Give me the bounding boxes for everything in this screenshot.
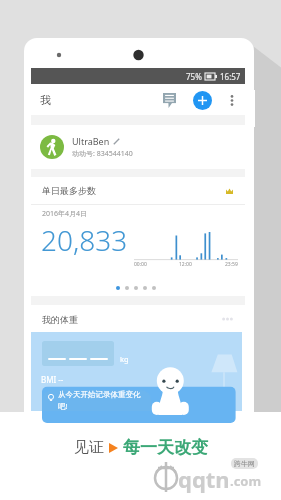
staticText: 见证 <box>74 438 104 457</box>
staticText: qqtn <box>178 464 230 494</box>
staticText: 从今天开始记录体重变化吧! <box>58 390 141 411</box>
staticText: 单日最多步数 <box>42 185 96 196</box>
staticText: 75% <box>186 71 202 82</box>
button[interactable]: 从今天开始记录体重变化吧! <box>42 390 151 411</box>
staticText: 动动号: 834544140 <box>72 149 133 159</box>
staticText: 23:59 <box>225 261 238 268</box>
staticText: 跨牛网 <box>234 459 255 468</box>
staticText: 12:00 <box>179 261 192 268</box>
button[interactable]: 我的体重 <box>31 305 245 333</box>
staticText: 我 <box>40 93 51 107</box>
button[interactable]: More options <box>220 88 244 112</box>
staticText: 00:00 <box>134 261 147 268</box>
staticText: 20,833 <box>41 221 128 259</box>
button[interactable]: 我 <box>40 93 51 107</box>
staticText: 我的体重 <box>42 314 78 325</box>
staticText: .com <box>230 472 262 490</box>
button[interactable] <box>42 341 114 366</box>
staticText: UltraBen <box>72 135 110 147</box>
staticText: 2016年4月4日 <box>42 209 88 219</box>
button[interactable]: Messages <box>157 88 181 112</box>
button[interactable]: Add <box>193 91 212 110</box>
other: More <box>222 317 233 321</box>
staticText: 每一天改变 <box>123 437 208 458</box>
button[interactable]: UltraBen <box>31 125 245 169</box>
staticText: BMI -- <box>41 374 64 385</box>
staticText: kg <box>120 354 129 364</box>
button[interactable]: 单日最多步数 <box>31 177 245 204</box>
staticText: 16:57 <box>220 71 241 82</box>
